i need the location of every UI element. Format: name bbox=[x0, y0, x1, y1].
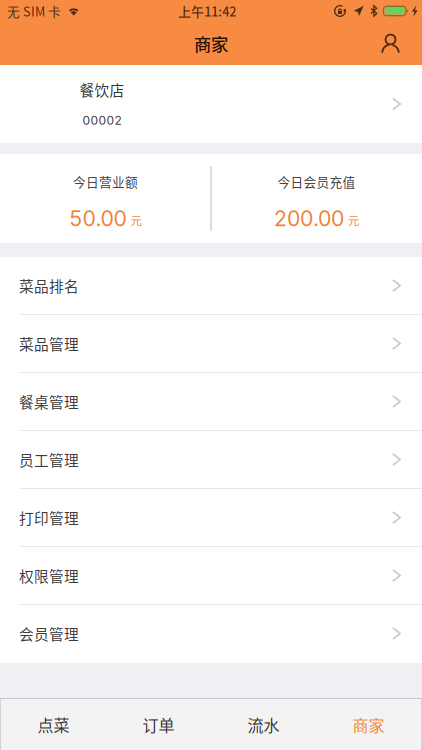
staticText: 餐饮店 bbox=[79, 79, 124, 100]
button[interactable]: Account bbox=[381, 33, 422, 53]
button[interactable]: 菜品排名 bbox=[0, 257, 422, 315]
staticText: 200.00 bbox=[274, 206, 344, 231]
staticText: 订单 bbox=[142, 713, 174, 736]
staticText: 今日营业额 bbox=[73, 172, 138, 191]
button[interactable]: 餐饮店 bbox=[0, 65, 422, 143]
button[interactable]: 员工管理 bbox=[0, 431, 422, 489]
button[interactable]: 会员管理 bbox=[0, 605, 422, 663]
staticText: 元 bbox=[348, 212, 359, 228]
staticText: 菜品排名 bbox=[19, 275, 79, 296]
staticText: 上午11:42 bbox=[178, 2, 236, 20]
staticText: 会员管理 bbox=[19, 623, 79, 644]
button[interactable]: 订单 bbox=[106, 699, 211, 750]
staticText: 商家 bbox=[352, 713, 384, 736]
staticText: 无 SIM 卡 bbox=[7, 2, 61, 20]
button[interactable]: 菜品管理 bbox=[0, 315, 422, 373]
staticText: 餐桌管理 bbox=[19, 391, 79, 412]
button[interactable]: 餐桌管理 bbox=[0, 373, 422, 431]
staticText: 50.00 bbox=[69, 206, 126, 231]
staticText: 元 bbox=[130, 212, 141, 228]
staticText: 商家 bbox=[194, 31, 228, 56]
staticText: 菜品管理 bbox=[19, 333, 79, 354]
staticText: 流水 bbox=[247, 713, 279, 736]
staticText: 权限管理 bbox=[19, 565, 79, 586]
staticText: 点菜 bbox=[37, 713, 69, 736]
button[interactable]: 流水 bbox=[211, 699, 316, 750]
staticText: 打印管理 bbox=[19, 507, 79, 528]
staticText: 00002 bbox=[82, 113, 121, 128]
staticText: 今日会员充值 bbox=[277, 172, 355, 191]
button[interactable]: 打印管理 bbox=[0, 489, 422, 547]
button[interactable]: 权限管理 bbox=[0, 547, 422, 605]
button[interactable]: 点菜 bbox=[1, 699, 106, 750]
staticText: 员工管理 bbox=[19, 449, 79, 470]
button[interactable]: 商家 bbox=[316, 699, 421, 750]
